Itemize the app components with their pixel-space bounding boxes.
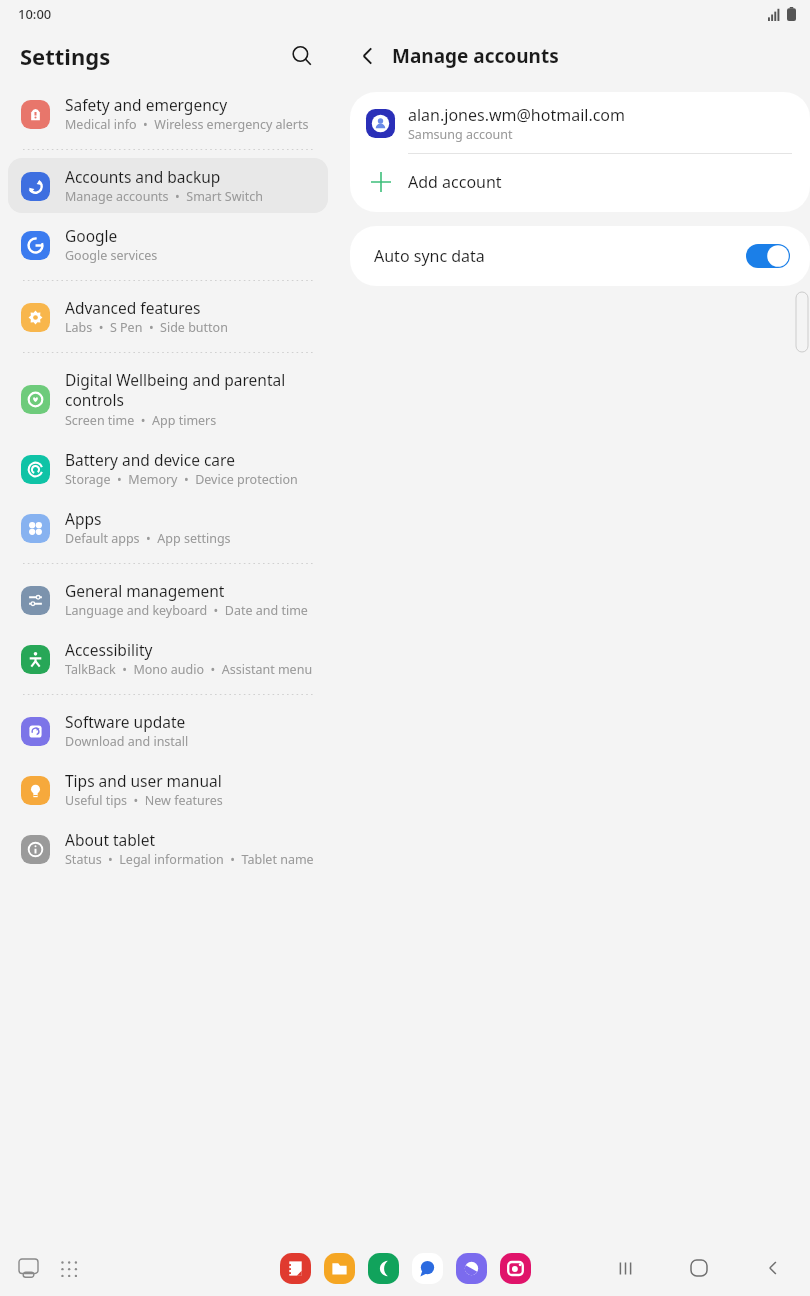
staticText: Medical info • Wireless emergency alerts: [65, 116, 309, 133]
staticText: Useful tips • New features: [65, 792, 223, 809]
staticText: Default apps • App settings: [65, 530, 231, 547]
button[interactable]: Recents panel: [8, 1248, 48, 1288]
staticText: General management: [65, 580, 225, 601]
staticText: Language and keyboard • Date and time: [65, 602, 308, 619]
staticText: Apps: [65, 508, 102, 529]
staticText: Manage accounts: [392, 43, 559, 69]
button[interactable]: Accessibility: [8, 631, 328, 686]
staticText: Accounts and backup: [65, 166, 221, 187]
staticText: Labs • S Pen • Side button: [65, 319, 228, 336]
button[interactable]: Tips and user manual: [8, 762, 328, 817]
staticText: Google services: [65, 247, 158, 264]
button[interactable]: Samsung Notes: [278, 1251, 312, 1285]
staticText: Google: [65, 225, 118, 246]
staticText: Manage accounts • Smart Switch: [65, 188, 263, 205]
staticText: Tips and user manual: [65, 770, 222, 791]
button[interactable]: About tablet: [8, 821, 328, 876]
button[interactable]: Apps: [8, 500, 328, 555]
button[interactable]: General management: [8, 572, 328, 627]
button[interactable]: Home: [680, 1249, 718, 1287]
button[interactable]: Battery and device care: [8, 441, 328, 496]
button[interactable]: Auto sync data: [350, 226, 810, 286]
staticText: TalkBack • Mono audio • Assistant menu: [65, 661, 313, 678]
button[interactable]: Recent apps: [606, 1249, 644, 1287]
button[interactable]: Software update: [8, 703, 328, 758]
staticText: 10:00: [18, 5, 52, 23]
staticText: About tablet: [65, 829, 156, 850]
button[interactable]: Safety and emergency: [8, 86, 328, 141]
staticText: Software update: [65, 711, 186, 732]
staticText: Digital Wellbeing and parental controls: [65, 369, 318, 411]
staticText: Advanced features: [65, 297, 201, 318]
staticText: Download and install: [65, 733, 189, 750]
button[interactable]: Back: [754, 1249, 792, 1287]
staticText: Safety and emergency: [65, 94, 228, 115]
button[interactable]: alan.jones.wm@hotmail.com: [350, 92, 810, 153]
staticText: Accessibility: [65, 639, 153, 660]
button[interactable]: Internet: [454, 1251, 488, 1285]
button[interactable]: Accounts and backup: [8, 158, 328, 213]
button[interactable]: Back: [348, 36, 388, 76]
staticText: alan.jones.wm@hotmail.com: [408, 104, 625, 126]
staticText: Settings: [20, 41, 111, 71]
button[interactable]: Phone: [366, 1251, 400, 1285]
staticText: Battery and device care: [65, 449, 235, 470]
button[interactable]: Search: [282, 36, 322, 76]
staticText: Status • Legal information • Tablet name: [65, 851, 314, 868]
button[interactable]: Google: [8, 217, 328, 272]
staticText: Auto sync data: [374, 245, 485, 267]
button[interactable]: My Files: [322, 1251, 356, 1285]
staticText: Samsung account: [408, 126, 513, 143]
staticText: Add account: [408, 171, 502, 193]
button[interactable]: Advanced features: [8, 289, 328, 344]
button[interactable]: Digital Wellbeing and parental controls: [8, 361, 328, 437]
button[interactable]: Messages: [410, 1251, 444, 1285]
staticText: Storage • Memory • Device protection: [65, 471, 298, 488]
button[interactable]: Add account: [350, 154, 810, 212]
staticText: Screen time • App timers: [65, 412, 217, 429]
button[interactable]: All apps: [48, 1248, 88, 1288]
button[interactable]: Camera: [498, 1251, 532, 1285]
